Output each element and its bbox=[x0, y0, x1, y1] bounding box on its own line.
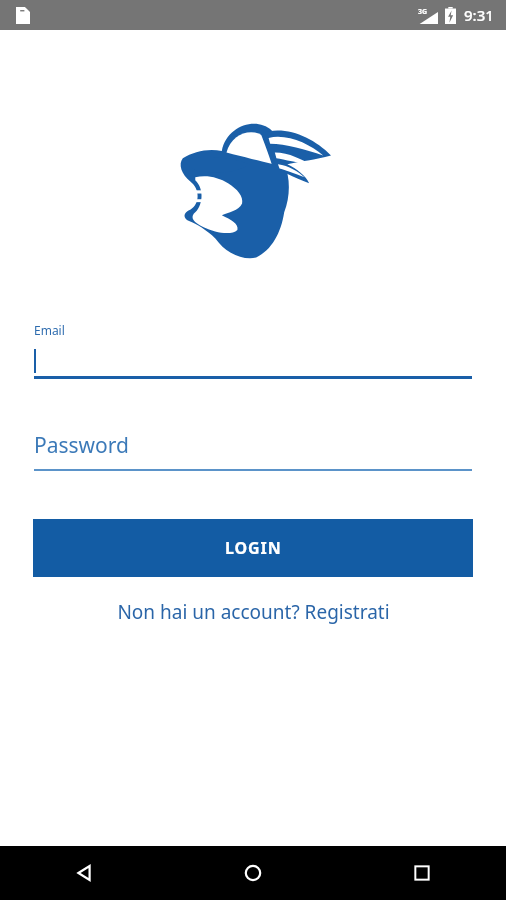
button[interactable]: Back bbox=[0, 846, 168, 900]
button[interactable]: Recent apps bbox=[337, 846, 506, 900]
staticText: 9:31 bbox=[464, 5, 494, 25]
staticText: Non hai un account? Registrati bbox=[117, 599, 390, 625]
button[interactable]: Password bbox=[34, 431, 472, 471]
button[interactable]: Non hai un account? Registrati bbox=[105, 593, 402, 631]
staticText: 3G bbox=[418, 7, 428, 17]
staticText: LOGIN bbox=[225, 537, 282, 559]
staticText: Email bbox=[34, 322, 65, 338]
button[interactable]: Email bbox=[34, 322, 472, 379]
button[interactable]: LOGIN bbox=[33, 519, 473, 577]
button[interactable]: Home bbox=[168, 846, 337, 900]
staticText: Password bbox=[34, 431, 129, 460]
